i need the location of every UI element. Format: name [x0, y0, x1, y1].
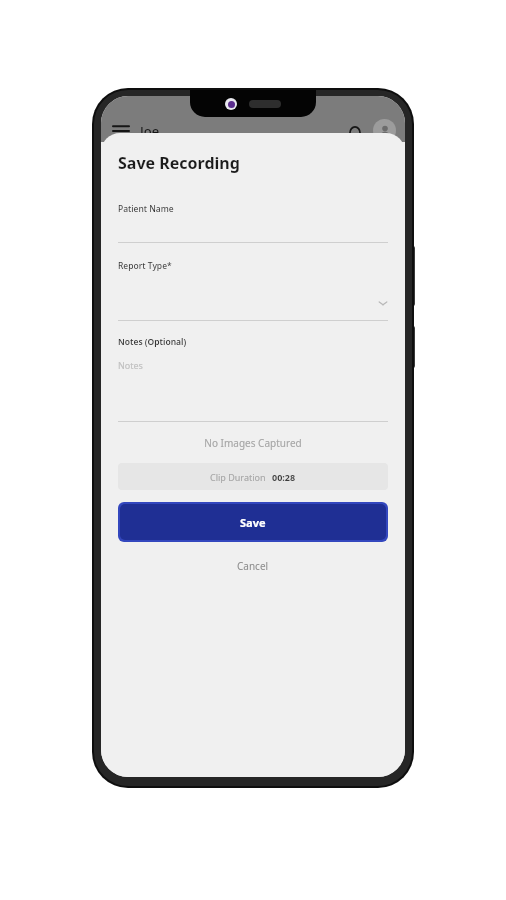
staticText: Notes (Optional)	[118, 336, 187, 348]
staticText: 00:28	[272, 471, 296, 483]
button[interactable]: Notifications	[344, 120, 366, 142]
button[interactable]: Save	[120, 504, 386, 540]
staticText: Save	[240, 515, 266, 530]
staticText: Patient Name	[118, 203, 174, 215]
staticText: Notes	[118, 359, 143, 371]
staticText: No Images Captured	[118, 436, 388, 450]
button[interactable]: Account	[373, 119, 396, 142]
staticText: Save Recording	[118, 152, 240, 174]
staticText: Report Type*	[118, 260, 172, 272]
staticText: Clip Duration	[210, 471, 266, 483]
staticText: Joe	[140, 122, 160, 140]
staticText: Cancel	[237, 559, 269, 573]
button[interactable]: Menu	[110, 120, 132, 142]
button[interactable]: Cancel	[118, 553, 388, 579]
